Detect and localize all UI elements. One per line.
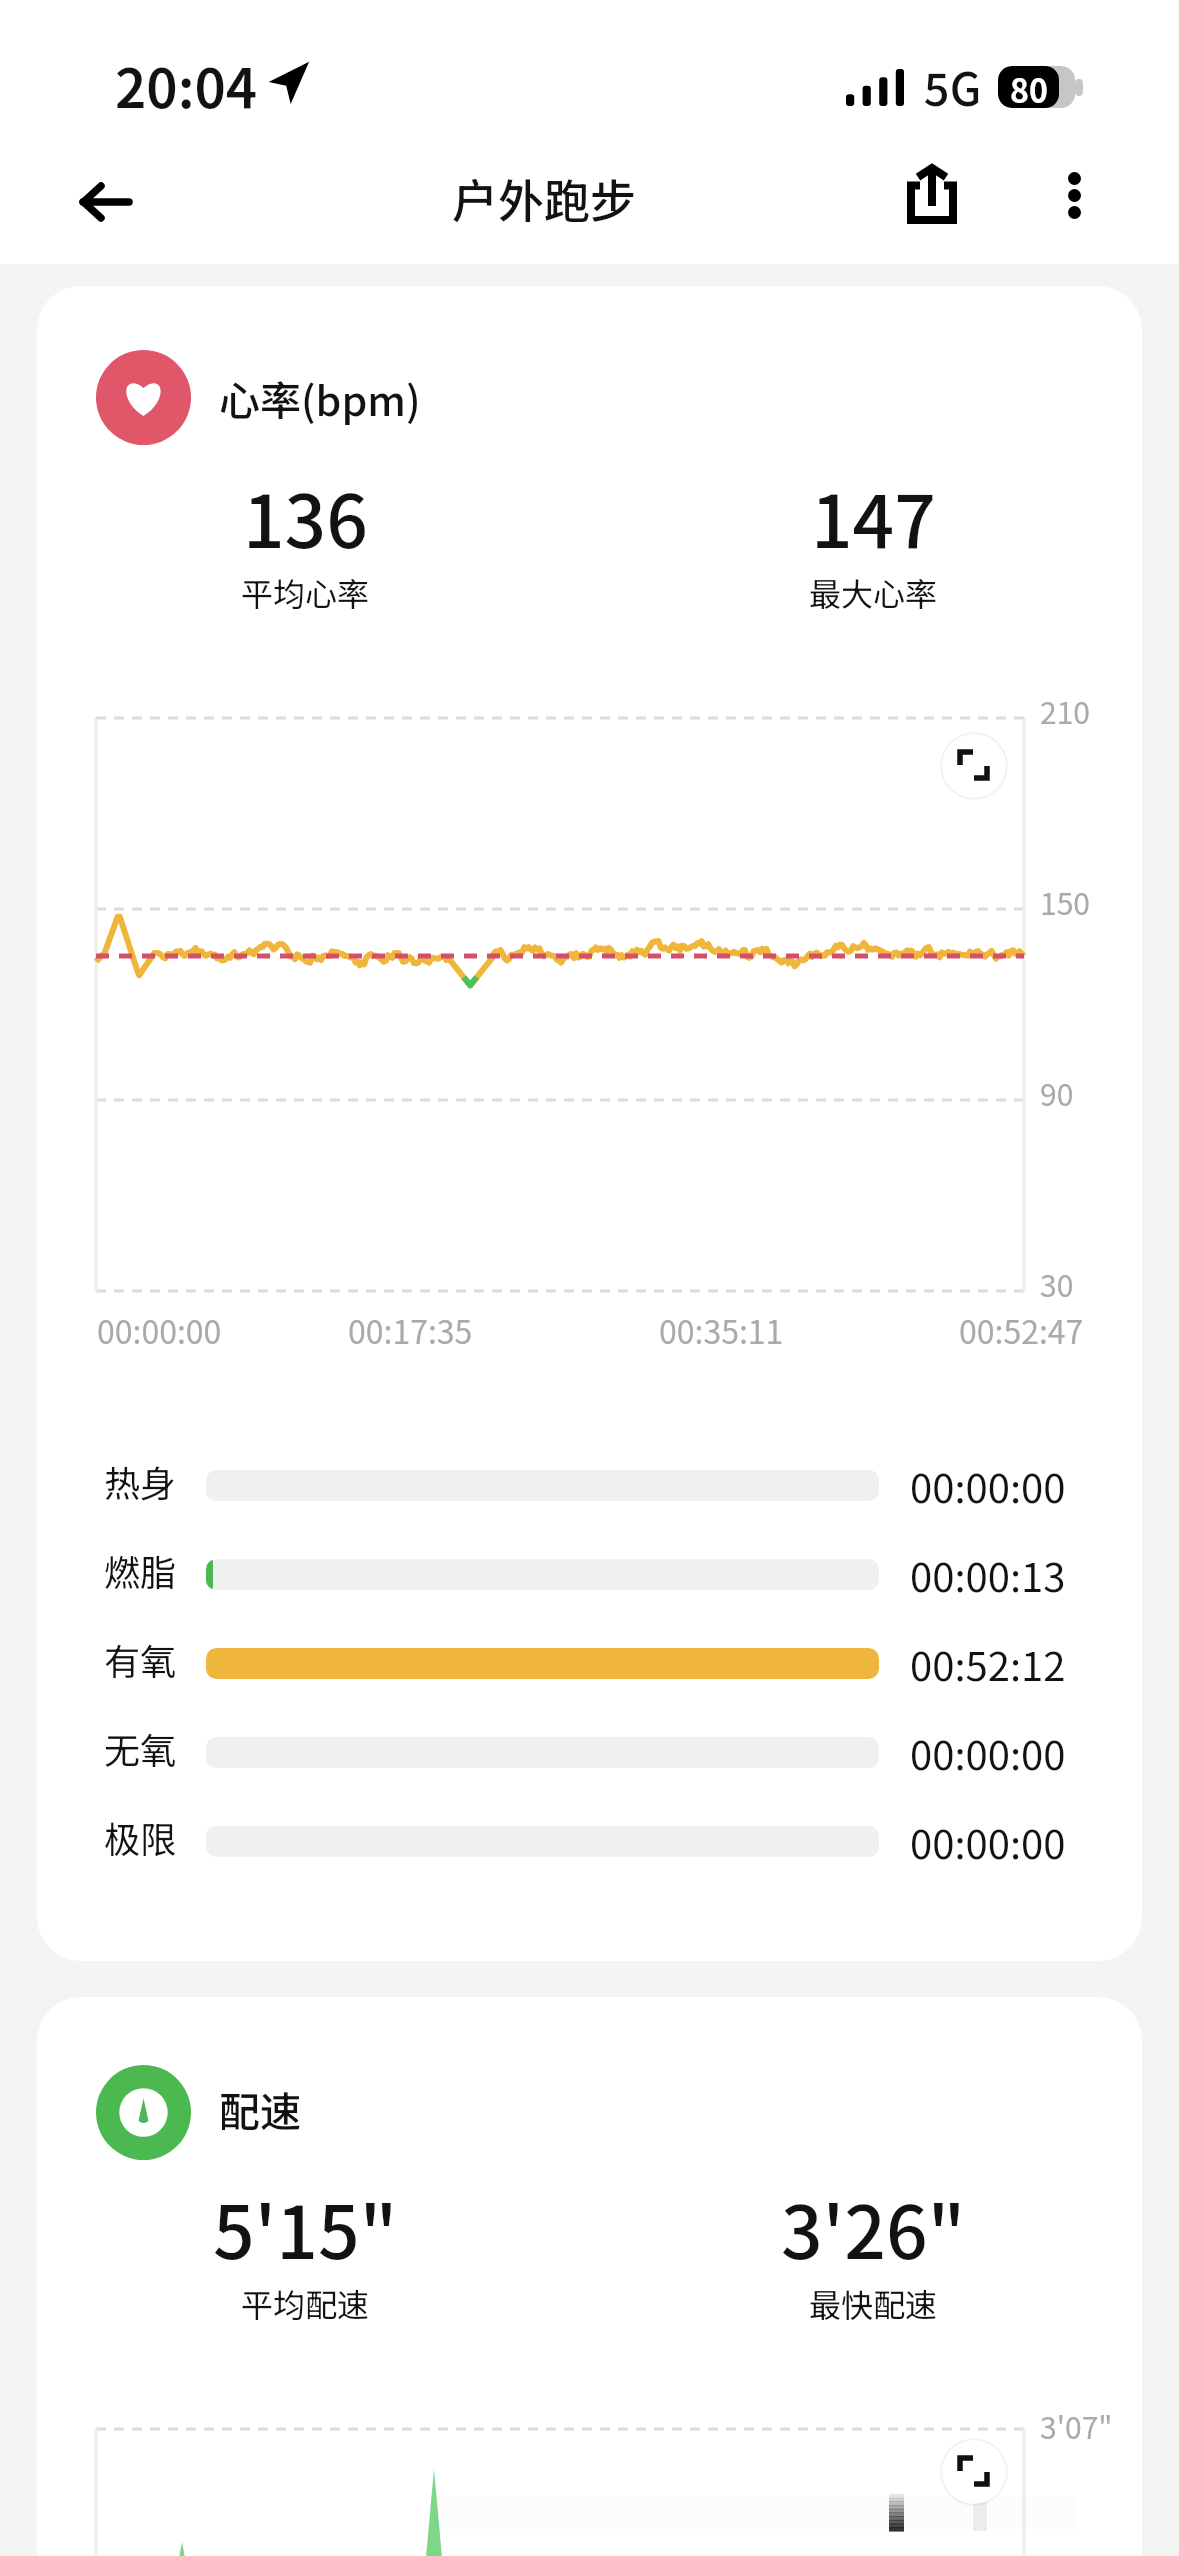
staticText: 3'07" <box>1040 2404 1113 2447</box>
staticText: 5G <box>924 54 982 119</box>
staticText: 3'26" <box>781 2174 966 2280</box>
staticText: 00:52:47 <box>959 1307 1084 1353</box>
button[interactable]: 心率(bpm) <box>37 286 1142 1961</box>
staticText: 00:00:13 <box>910 1546 1066 1604</box>
staticText: 最快配速 <box>809 2280 938 2326</box>
button[interactable]: Expand pace chart <box>939 2437 1009 2507</box>
staticText: 147 <box>811 463 936 569</box>
staticText: 无氧 <box>104 1722 177 1774</box>
staticText: 210 <box>1040 689 1090 732</box>
staticText: 平均心率 <box>241 569 370 615</box>
staticText: 30 <box>1040 1262 1074 1305</box>
staticText: 心率(bpm) <box>219 368 421 427</box>
button[interactable]: Expand heart rate chart <box>939 731 1009 801</box>
staticText: 00:00:00 <box>910 1724 1066 1782</box>
staticText: 00:35:11 <box>659 1307 784 1353</box>
button[interactable]: More options <box>1028 149 1120 241</box>
staticText: 00:00:00 <box>910 1457 1066 1515</box>
staticText: 00:52:12 <box>910 1635 1066 1693</box>
staticText: 配速 <box>219 2079 301 2138</box>
staticText: 00:17:35 <box>348 1307 473 1353</box>
staticText: 80 <box>1010 66 1048 108</box>
staticText: 90 <box>1040 1071 1074 1114</box>
staticText: 极限 <box>104 1811 177 1863</box>
staticText: 平均配速 <box>241 2280 370 2326</box>
button[interactable]: Back <box>55 152 155 252</box>
staticText: 00:00:00 <box>97 1307 222 1353</box>
button[interactable]: 配速 <box>37 1997 1142 2556</box>
staticText: 热身 <box>104 1455 177 1507</box>
staticText: 150 <box>1040 880 1090 923</box>
staticText: 20:04 <box>115 45 258 123</box>
staticText: 00:00:00 <box>910 1813 1066 1871</box>
staticText: 户外跑步 <box>452 165 636 232</box>
staticText: 燃脂 <box>104 1544 177 1596</box>
staticText: 有氧 <box>104 1633 177 1685</box>
staticText: 5'15" <box>213 2174 398 2280</box>
button[interactable]: Share <box>884 146 980 242</box>
staticText: 最大心率 <box>809 569 938 615</box>
button[interactable]: 户外跑步 <box>432 150 656 246</box>
staticText: 136 <box>243 463 368 569</box>
